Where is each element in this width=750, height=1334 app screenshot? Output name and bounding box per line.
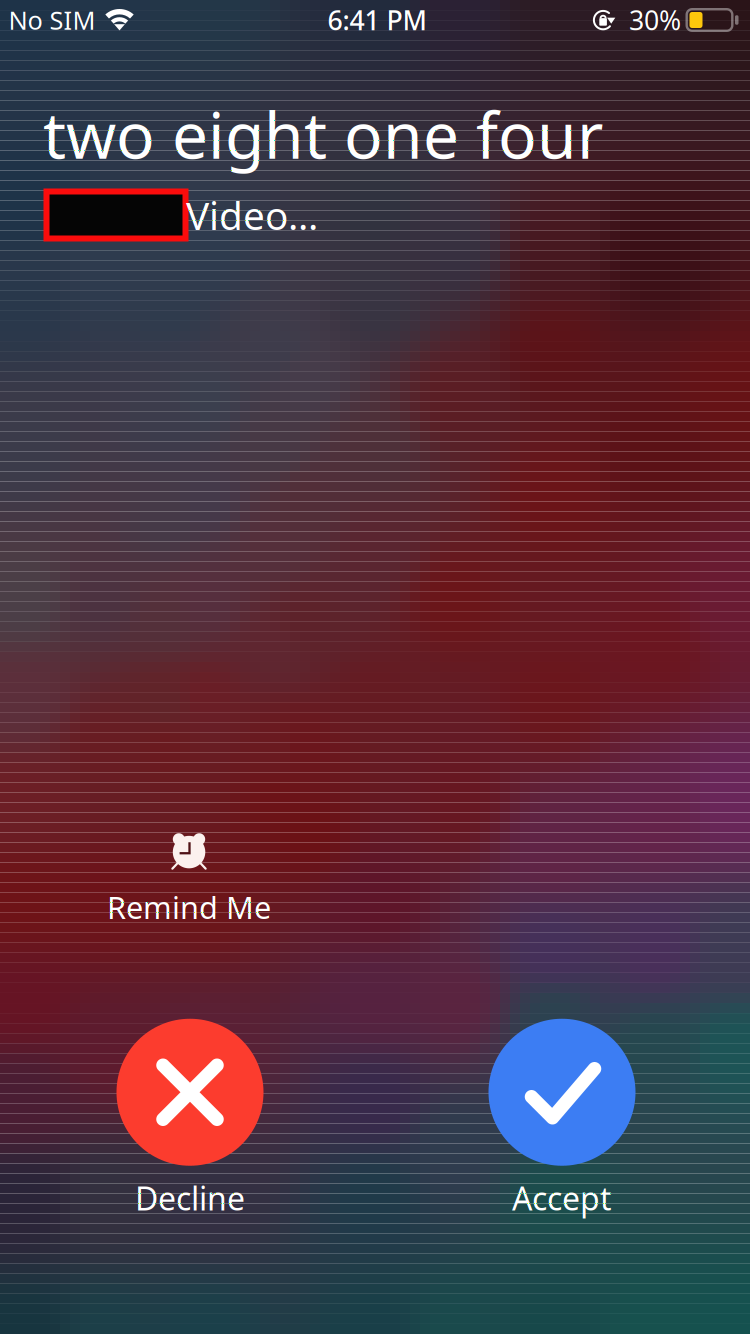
- button[interactable]: Remind Me: [69, 824, 309, 934]
- button[interactable]: Accept: [442, 1010, 682, 1228]
- staticText: No SIM: [8, 3, 95, 37]
- staticText: two eight one four: [43, 91, 603, 176]
- button[interactable]: Decline: [70, 1010, 310, 1228]
- staticText: Accept: [512, 1177, 612, 1219]
- staticText: 30%: [629, 2, 681, 38]
- staticText: Decline: [135, 1177, 245, 1219]
- staticText: Video...: [186, 189, 318, 241]
- staticText: Remind Me: [107, 887, 271, 927]
- staticText: 6:41 PM: [327, 2, 426, 38]
